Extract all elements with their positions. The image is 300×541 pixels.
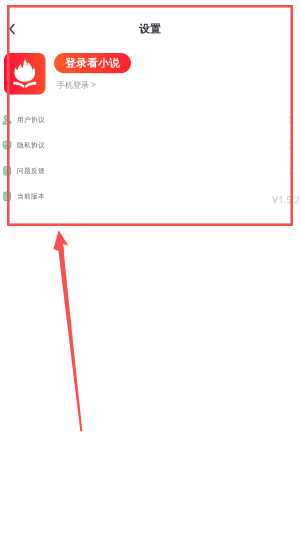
staticText: 手机登录 > — [57, 79, 96, 90]
staticText: 登录看小说 — [65, 56, 120, 70]
button[interactable]: 用户协议 — [0, 107, 300, 132]
button[interactable]: 当前版本 — [0, 183, 300, 209]
staticText: V1.5.2 — [272, 194, 299, 206]
button[interactable]: Back — [0, 14, 16, 44]
button[interactable]: 问题反馈 — [0, 158, 300, 183]
staticText: 设置 — [139, 22, 161, 35]
staticText: 用户协议 — [17, 116, 45, 124]
staticText: 问题反馈 — [17, 167, 45, 175]
staticText: 隐私协议 — [17, 141, 45, 149]
staticText: 当前版本 — [17, 192, 45, 200]
button[interactable]: 隐私协议 — [0, 132, 300, 158]
button[interactable]: 登录看小说 — [0, 53, 300, 94]
